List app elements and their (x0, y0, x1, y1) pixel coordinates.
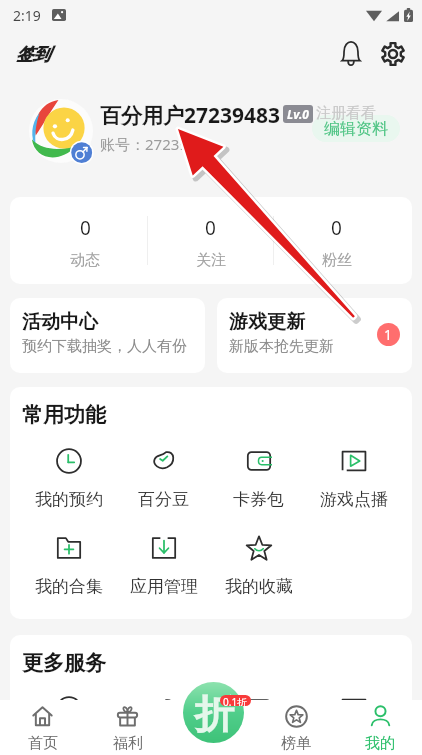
staticText: 常用功能 (22, 402, 106, 428)
staticText: 我的预约 (35, 489, 103, 510)
staticText: 首页 (28, 734, 58, 753)
button[interactable]: 客服中心 (21, 696, 116, 755)
staticText: 0 (205, 215, 216, 241)
staticText: Lv.0 (287, 106, 309, 122)
staticText: 福利 (113, 734, 143, 753)
button[interactable]: 应用管理 (116, 535, 211, 597)
button[interactable]: Settings (373, 34, 413, 74)
staticText: 活动中心 (22, 310, 98, 334)
staticText: 0 (80, 215, 91, 241)
button[interactable]: Notifications (331, 34, 371, 74)
button[interactable]: 意见反馈 (116, 696, 211, 755)
staticText: 0 (331, 215, 342, 241)
button[interactable]: 0 (23, 197, 147, 284)
staticText: 0.1折 (223, 695, 248, 706)
staticText: 注册看看 (316, 104, 376, 123)
staticText: 榜单 (281, 734, 311, 753)
staticText: 粉丝 (322, 251, 352, 270)
button[interactable]: 关于我们 (211, 696, 306, 755)
staticText: 折 (194, 689, 234, 739)
staticText: 动态 (70, 251, 100, 270)
button[interactable]: 编辑资料 (312, 115, 400, 142)
staticText: 更多服务 (22, 650, 106, 676)
staticText: 我的合集 (35, 576, 103, 597)
staticText: 客服中心 (35, 737, 103, 755)
staticText: 1 (384, 325, 393, 344)
staticText: 游戏点播 (320, 489, 388, 510)
button[interactable]: 榜单 (254, 700, 338, 755)
staticText: 关注 (196, 251, 226, 270)
staticText: 2:19 (13, 6, 41, 25)
button[interactable]: 在线客服 (306, 696, 401, 755)
button[interactable]: 我的 (338, 700, 422, 755)
staticText: 账号：27239483 (100, 134, 214, 154)
button[interactable]: 百分豆 (116, 448, 211, 510)
staticText: 游戏更新 (229, 310, 305, 334)
staticText: 意见反馈 (130, 737, 198, 755)
button[interactable]: 我的预约 (21, 448, 116, 510)
staticText: 百分用户27239483 (100, 101, 281, 130)
staticText: 我的 (365, 734, 395, 753)
button[interactable]: 游戏更新 (217, 298, 412, 373)
staticText: 签到 (16, 44, 50, 65)
staticText: 在线客服 (320, 737, 388, 755)
button[interactable]: 我的收藏 (211, 535, 306, 597)
staticText: 关于我们 (225, 737, 293, 755)
button[interactable]: Avatar (29, 99, 93, 163)
staticText: 百分豆 (138, 489, 189, 510)
staticText: 我的收藏 (225, 576, 293, 597)
staticText: 应用管理 (130, 576, 198, 597)
button[interactable]: 活动中心 (10, 298, 205, 373)
staticText: 编辑资料 (324, 119, 388, 139)
staticText: 卡券包 (233, 489, 284, 510)
button[interactable]: 首页 (0, 700, 85, 755)
button[interactable]: 我的合集 (21, 535, 116, 597)
button[interactable]: Discount (183, 682, 244, 743)
button[interactable]: 福利 (85, 700, 170, 755)
button[interactable]: 0 (148, 197, 273, 284)
staticText: 预约下载抽奖，人人有份 (22, 337, 187, 356)
button[interactable]: 0 (274, 197, 399, 284)
staticText: 新版本抢先更新 (229, 337, 334, 356)
button[interactable]: 游戏点播 (306, 448, 401, 510)
button[interactable]: 卡券包 (211, 448, 306, 510)
